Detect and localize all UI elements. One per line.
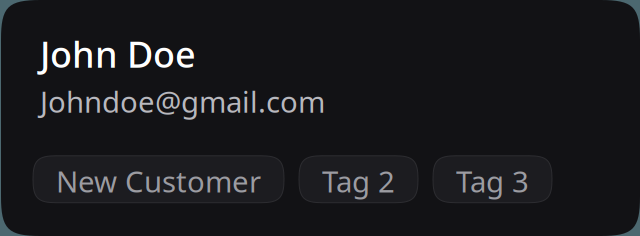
staticText: Johndoe@gmail.com: [40, 82, 325, 121]
staticText: New Customer: [56, 162, 261, 201]
staticText: John Doe: [40, 30, 196, 78]
button[interactable]: New Customer: [33, 156, 284, 203]
staticText: Tag 3: [456, 162, 529, 201]
button[interactable]: Tag 3: [433, 156, 552, 203]
staticText: Tag 2: [322, 162, 395, 201]
button[interactable]: Tag 2: [299, 156, 418, 203]
